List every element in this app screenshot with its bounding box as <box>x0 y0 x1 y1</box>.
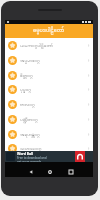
staticText: သဟဿဝဂ္ဂ <box>20 145 42 152</box>
button[interactable]: ပါပဝဂ္ဂ <box>5 156 93 170</box>
button[interactable]: ယမကဝဂ္ဂပါဠိတော် <box>5 38 93 52</box>
button[interactable]: ပဏ္ဍိတဝဂ္ဂ <box>5 112 93 126</box>
button[interactable]: Home <box>44 166 55 177</box>
staticText: အရဟန္တဝဂ္ဂ <box>20 131 40 138</box>
staticText: Word Ball <box>17 151 34 156</box>
button[interactable]: သဟဿဝဂ္ဂ <box>5 141 93 155</box>
button[interactable]: Install <box>75 151 85 162</box>
staticText: အပ္ပမာဒဝဂ္ဂ <box>20 57 40 64</box>
button[interactable]: Back <box>25 166 36 177</box>
staticText: ဗာလဝဂ္ဂ <box>20 101 35 108</box>
staticText: ပါပဝဂ္ဂ <box>20 160 32 167</box>
button[interactable]: စိတ္တဝဂ္ဂ <box>5 68 93 82</box>
staticText: ပဏ္ဍိတဝဂ္ဂ <box>20 116 38 123</box>
staticText: ဓမ္မပဒပါဠိတော် <box>33 26 65 36</box>
button[interactable]: ပုပ္ဖဝဂ္ဂ <box>5 82 93 96</box>
staticText: get more rewards <box>17 160 42 162</box>
button[interactable]: အပ္ပမာဒဝဂ္ဂ <box>5 53 93 67</box>
staticText: စိတ္တဝဂ္ဂ <box>20 72 33 79</box>
button[interactable]: အရဟန္တဝဂ္ဂ <box>5 127 93 141</box>
button[interactable]: Word Ball <box>5 151 93 162</box>
staticText: Free to download and <box>17 156 47 160</box>
button[interactable]: ဗာလဝဂ္ဂ <box>5 97 93 111</box>
button[interactable]: Recents <box>65 166 76 177</box>
staticText: ပုပ္ဖဝဂ္ဂ <box>20 86 31 93</box>
staticText: ယမကဝဂ္ဂပါဠိတော် <box>20 42 54 49</box>
